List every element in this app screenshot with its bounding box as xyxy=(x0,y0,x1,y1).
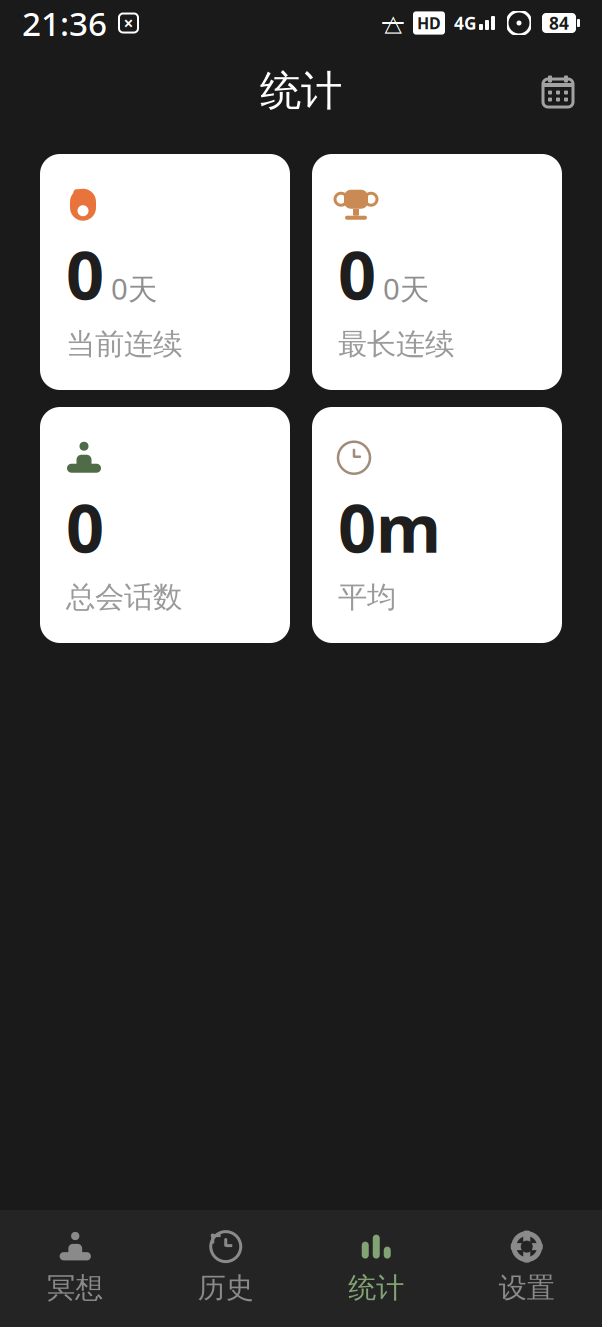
staticText: 4G xyxy=(454,11,477,34)
button[interactable]: 0 xyxy=(40,154,290,390)
staticText: 总会话数 xyxy=(66,579,182,615)
button[interactable]: 设置 xyxy=(451,1220,602,1315)
staticText: 0m xyxy=(338,483,441,571)
staticText: 0天 xyxy=(383,269,429,308)
button[interactable]: 0m xyxy=(312,407,562,643)
button[interactable]: 0 xyxy=(40,407,290,643)
staticText: × xyxy=(123,11,133,34)
staticText: 0 xyxy=(66,483,104,571)
staticText: 0 xyxy=(338,230,376,318)
staticText: HD xyxy=(417,12,441,34)
button[interactable]: 冥想 xyxy=(0,1220,150,1315)
staticText: 84 xyxy=(549,11,569,34)
staticText: 统计 xyxy=(260,66,342,116)
button[interactable]: 统计 xyxy=(301,1220,451,1315)
staticText: △ xyxy=(384,10,401,36)
staticText: 统计 xyxy=(348,1271,404,1305)
staticText: 平均 xyxy=(338,579,396,615)
button[interactable]: Calendar xyxy=(532,65,584,117)
button[interactable]: 0 xyxy=(312,154,562,390)
staticText: 0 xyxy=(66,230,104,318)
staticText: 最长连续 xyxy=(338,326,454,362)
staticText: 0天 xyxy=(111,269,157,308)
staticText: 当前连续 xyxy=(66,326,182,362)
staticText: 设置 xyxy=(499,1271,555,1305)
staticText: 21:36 xyxy=(22,1,107,45)
staticText: 冥想 xyxy=(47,1271,103,1305)
staticText: 历史 xyxy=(198,1271,254,1305)
button[interactable]: 历史 xyxy=(150,1220,301,1315)
